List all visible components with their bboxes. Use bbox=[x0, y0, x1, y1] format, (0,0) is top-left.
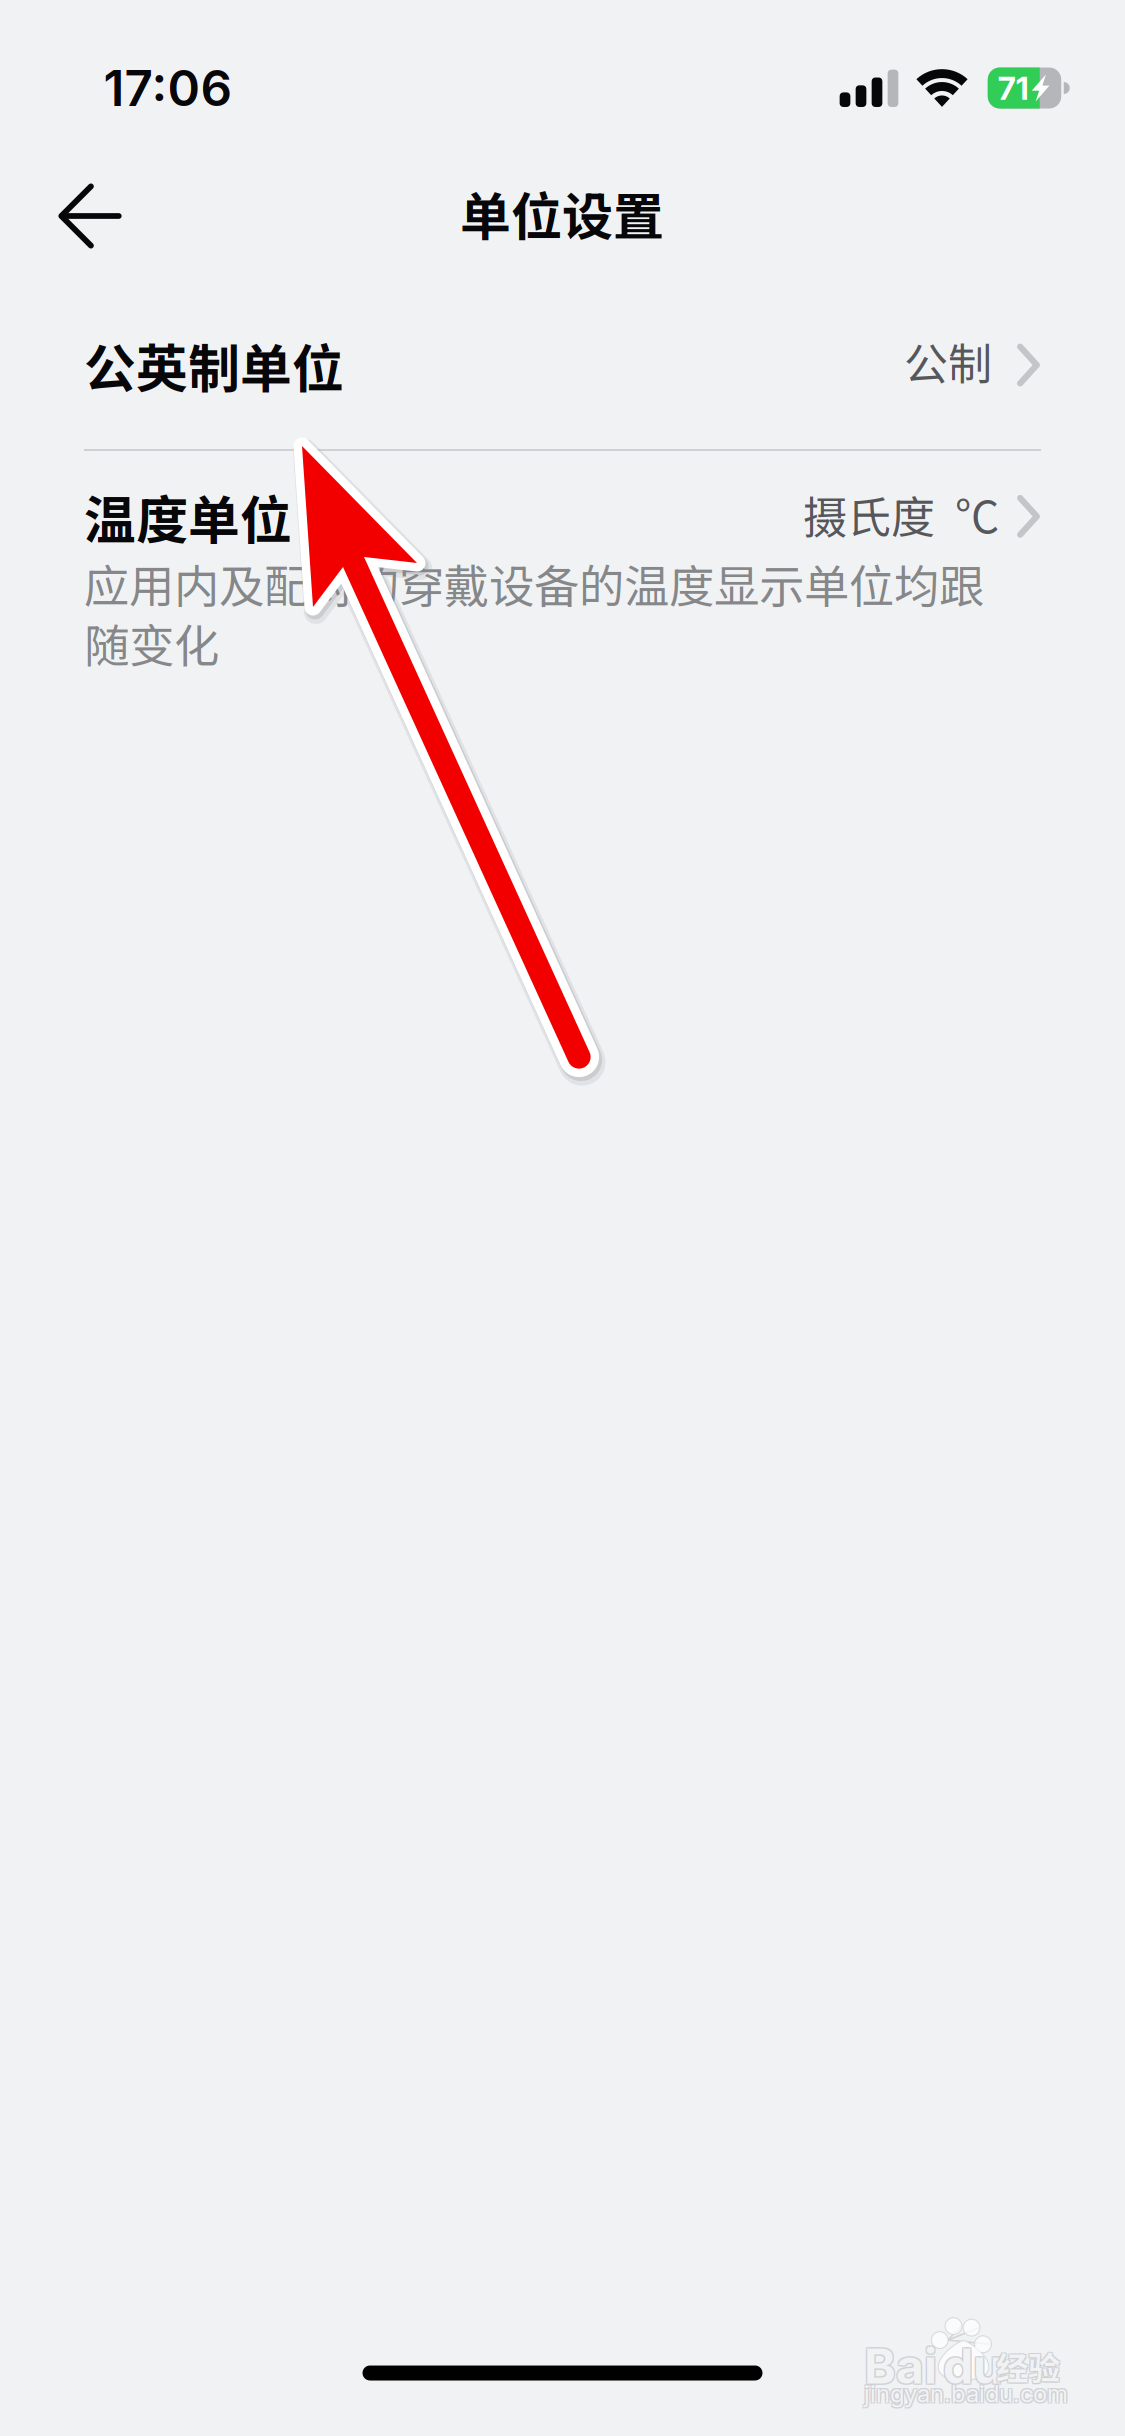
staticText: 单位设置 bbox=[460, 176, 664, 250]
staticText: 经验 bbox=[995, 2344, 1059, 2390]
staticText: 71 bbox=[998, 69, 1029, 107]
staticText: Bai bbox=[863, 2336, 936, 2394]
staticText: jingyan.baidu.com bbox=[863, 2378, 1067, 2407]
staticText: jingyan.baidu.com bbox=[865, 2380, 1069, 2409]
staticText: jingyan.baidu.com bbox=[864, 2379, 1068, 2408]
staticText: du bbox=[944, 2338, 1004, 2396]
button[interactable]: 公英制单位 bbox=[0, 280, 1125, 450]
staticText: 17:06 bbox=[103, 58, 232, 118]
staticText: du bbox=[942, 2338, 1002, 2396]
staticText: jingyan.baidu.com bbox=[863, 2380, 1067, 2409]
staticText: 经验 bbox=[996, 2343, 1060, 2389]
staticText: 公制 bbox=[904, 329, 992, 393]
staticText: du bbox=[942, 2336, 1002, 2394]
button[interactable]: Back bbox=[35, 161, 145, 271]
staticText: jingyan.baidu.com bbox=[865, 2378, 1069, 2407]
staticText: 公英制单位 bbox=[84, 327, 344, 402]
staticText: 温度单位 bbox=[84, 479, 292, 554]
staticText: du bbox=[943, 2337, 1003, 2395]
staticText: Bai bbox=[865, 2336, 938, 2394]
staticText: 经验 bbox=[997, 2344, 1061, 2390]
staticText: 摄氏度 °C bbox=[803, 482, 999, 546]
staticText: Bai bbox=[863, 2338, 936, 2396]
staticText: 经验 bbox=[997, 2342, 1061, 2388]
staticText: 应用内及配对的穿戴设备的温度显示单位均跟 bbox=[84, 550, 984, 616]
staticText: du bbox=[944, 2336, 1004, 2394]
staticText: 经验 bbox=[995, 2342, 1059, 2388]
staticText: Bai bbox=[864, 2337, 937, 2395]
button[interactable]: 温度单位 bbox=[0, 486, 1125, 676]
staticText: Bai bbox=[865, 2338, 938, 2396]
staticText: 随变化 bbox=[84, 610, 219, 676]
